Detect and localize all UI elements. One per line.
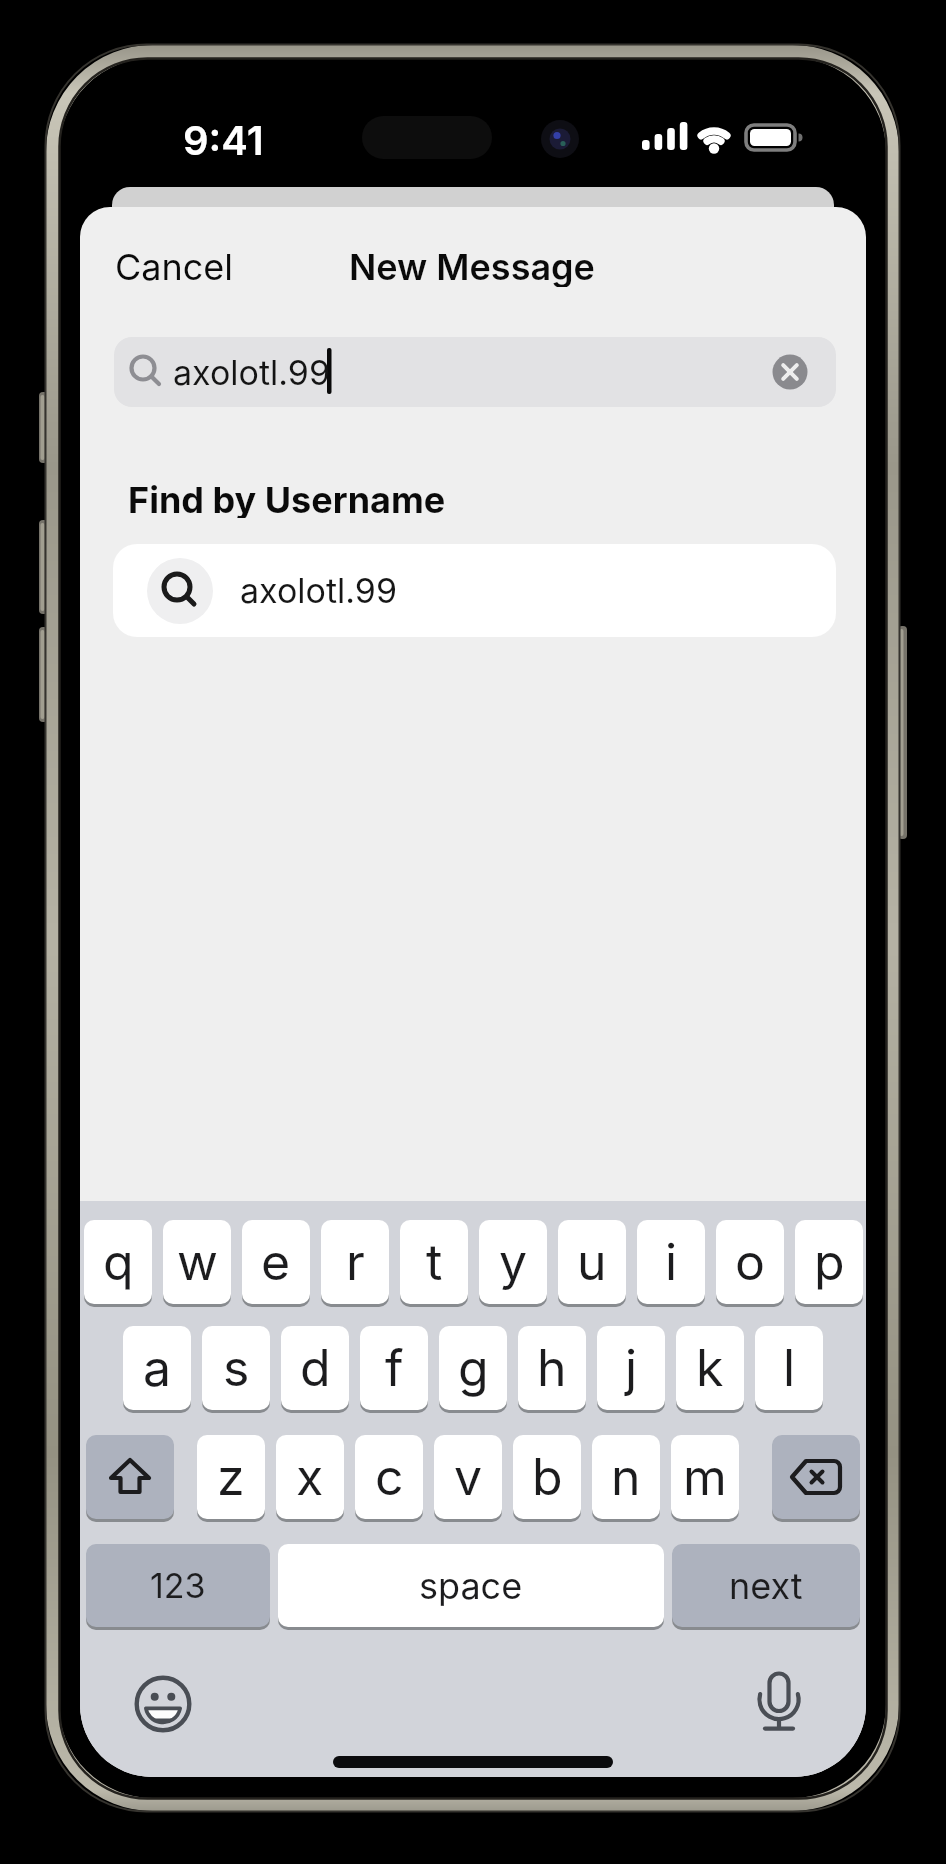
button[interactable]: z xyxy=(197,1435,265,1519)
button[interactable] xyxy=(772,1435,860,1519)
button[interactable]: v xyxy=(434,1435,502,1519)
button[interactable]: m xyxy=(671,1435,739,1519)
staticText: x xyxy=(296,1447,324,1507)
button[interactable] xyxy=(739,1663,819,1743)
button[interactable]: axolotl.99 xyxy=(113,544,836,637)
staticText: o xyxy=(735,1232,765,1292)
button[interactable]: e xyxy=(242,1220,310,1304)
button[interactable]: d xyxy=(281,1326,349,1410)
staticText: t xyxy=(426,1232,443,1292)
staticText: y xyxy=(499,1232,528,1292)
button[interactable]: Cancel xyxy=(115,245,275,287)
button[interactable]: u xyxy=(558,1220,626,1304)
staticText: 123 xyxy=(150,1565,206,1606)
button[interactable]: l xyxy=(755,1326,823,1410)
button[interactable]: y xyxy=(479,1220,547,1304)
staticText: axolotl.99 xyxy=(240,570,397,611)
staticText: g xyxy=(458,1338,489,1398)
staticText: s xyxy=(223,1338,250,1398)
staticText: a xyxy=(143,1338,172,1398)
staticText: j xyxy=(625,1338,638,1398)
button[interactable]: f xyxy=(360,1326,428,1410)
button[interactable]: x xyxy=(276,1435,344,1519)
button[interactable]: w xyxy=(163,1220,231,1304)
button[interactable]: c xyxy=(355,1435,423,1519)
button[interactable]: j xyxy=(597,1326,665,1410)
staticText: Cancel xyxy=(115,245,234,287)
staticText: u xyxy=(577,1232,607,1292)
button[interactable]: i xyxy=(637,1220,705,1304)
button[interactable]: space xyxy=(278,1544,664,1627)
staticText: 9:41 xyxy=(183,116,264,160)
button[interactable] xyxy=(123,1664,203,1744)
button[interactable]: p xyxy=(795,1220,863,1304)
staticText: Find by Username xyxy=(128,478,446,518)
button[interactable]: n xyxy=(592,1435,660,1519)
staticText: v xyxy=(454,1447,483,1507)
button[interactable]: k xyxy=(676,1326,744,1410)
staticText: next xyxy=(729,1564,803,1608)
button[interactable]: r xyxy=(321,1220,389,1304)
staticText: d xyxy=(300,1338,331,1398)
button[interactable]: 123 xyxy=(86,1544,270,1627)
staticText: r xyxy=(346,1232,365,1292)
button[interactable]: next xyxy=(672,1544,860,1627)
staticText: m xyxy=(683,1447,727,1507)
staticText: h xyxy=(537,1338,567,1398)
button[interactable] xyxy=(86,1435,174,1519)
staticText: k xyxy=(696,1338,724,1398)
staticText: w xyxy=(177,1232,218,1292)
button[interactable]: h xyxy=(518,1326,586,1410)
staticText: New Message xyxy=(349,245,595,287)
staticText: q xyxy=(103,1232,134,1292)
staticText: l xyxy=(783,1338,796,1398)
button[interactable]: b xyxy=(513,1435,581,1519)
button[interactable]: q xyxy=(84,1220,152,1304)
staticText: axolotl.99 xyxy=(173,352,330,393)
button[interactable]: t xyxy=(400,1220,468,1304)
button[interactable]: g xyxy=(439,1326,507,1410)
staticText: n xyxy=(611,1447,641,1507)
button[interactable]: o xyxy=(716,1220,784,1304)
staticText: p xyxy=(814,1232,845,1292)
button[interactable]: a xyxy=(123,1326,191,1410)
button[interactable]: s xyxy=(202,1326,270,1410)
button[interactable]: axolotl.99 xyxy=(114,337,836,407)
staticText: space xyxy=(419,1564,523,1608)
staticText: e xyxy=(261,1232,291,1292)
staticText: c xyxy=(375,1447,404,1507)
staticText: f xyxy=(385,1338,404,1398)
staticText: i xyxy=(665,1232,678,1292)
staticText: z xyxy=(217,1447,245,1507)
staticText: b xyxy=(532,1447,563,1507)
